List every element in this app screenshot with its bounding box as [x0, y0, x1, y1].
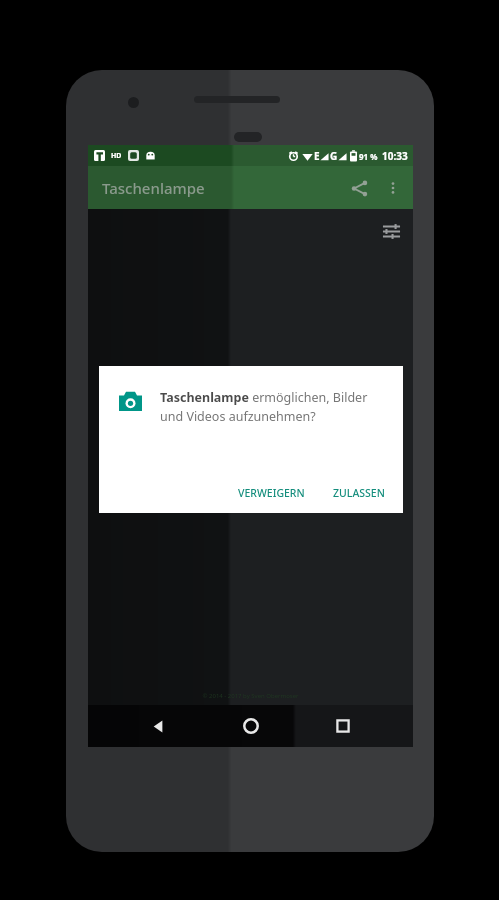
- staticText: 91 %: [359, 151, 378, 162]
- staticText: Taschenlampe ermöglichen, Bilder und Vid…: [160, 389, 389, 425]
- button[interactable]: Home: [229, 705, 273, 747]
- button[interactable]: VERWEIGERN: [228, 478, 315, 508]
- staticText: © 2014 - 2017 by Sven Obermoser: [202, 692, 299, 700]
- button[interactable]: Back: [136, 705, 180, 747]
- staticText: G: [330, 149, 338, 163]
- button[interactable]: Share: [341, 170, 377, 206]
- button[interactable]: More options: [377, 172, 409, 204]
- button[interactable]: Recent apps: [321, 705, 365, 747]
- staticText: VERWEIGERN: [238, 486, 305, 500]
- staticText: E: [314, 149, 320, 163]
- staticText: 10:33: [382, 149, 408, 163]
- button[interactable]: Settings: [374, 214, 408, 248]
- staticText: ZULASSEN: [333, 486, 385, 500]
- button[interactable]: ZULASSEN: [323, 478, 395, 508]
- staticText: HD: [111, 151, 122, 161]
- staticText: Taschenlampe: [102, 178, 205, 198]
